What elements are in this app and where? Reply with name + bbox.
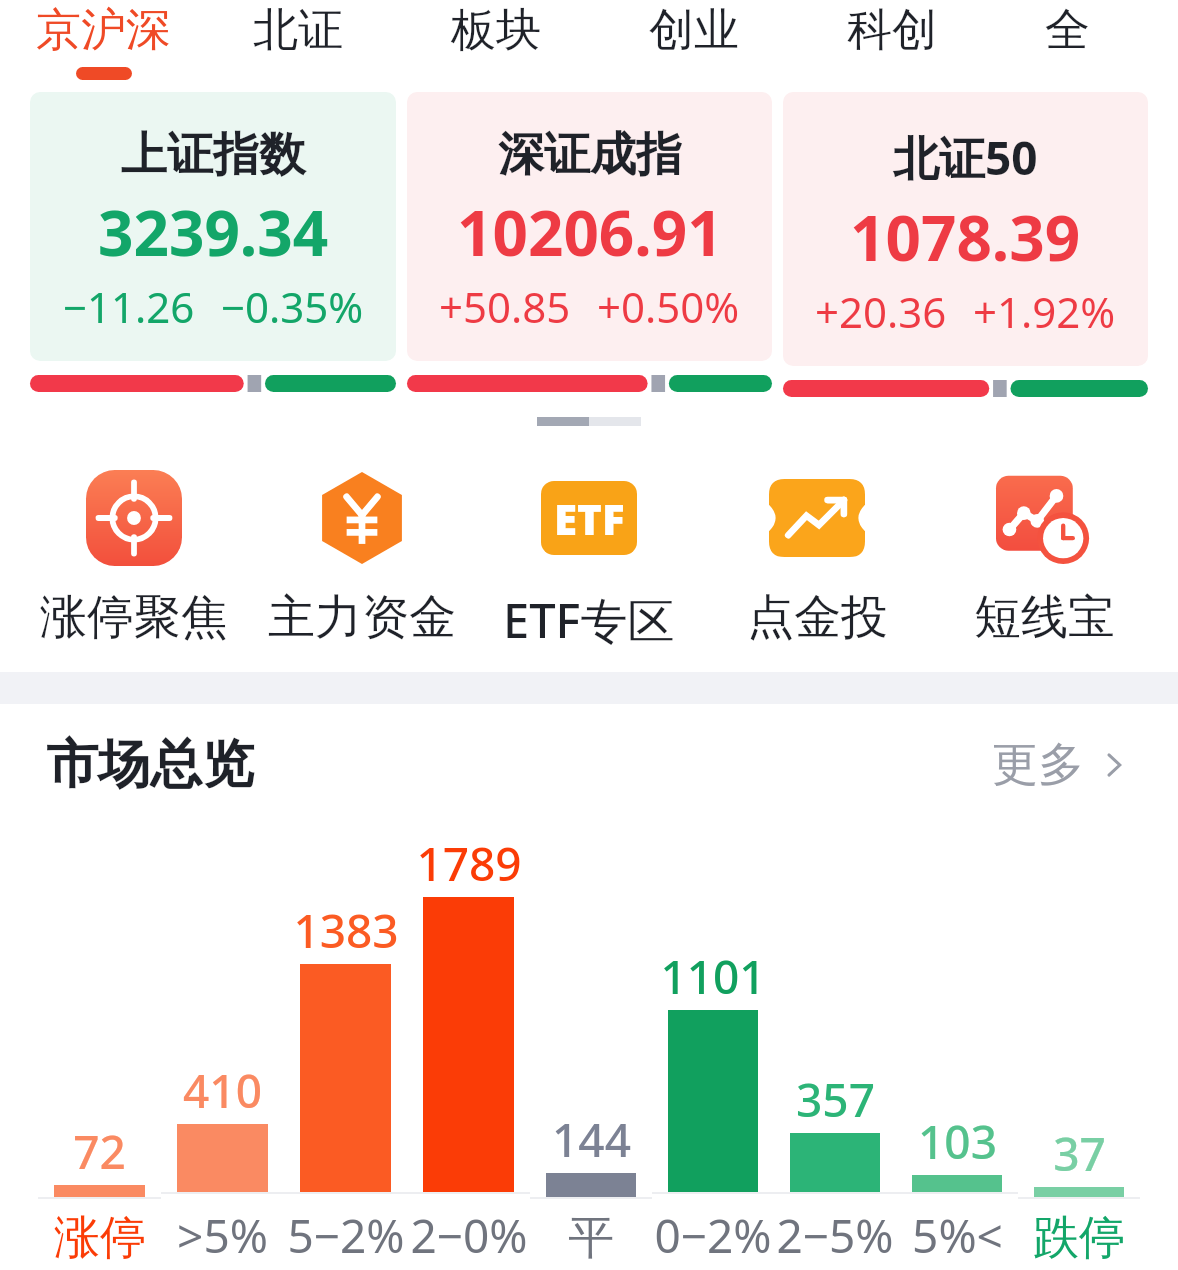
staticText: −0.35% [221, 278, 364, 335]
staticText: 点金投 [747, 588, 888, 647]
button[interactable]: 1101 [652, 945, 774, 1267]
button[interactable]: 京沪深 [36, 2, 171, 80]
staticText: +50.85 [439, 278, 571, 335]
button[interactable]: 主力资金 [262, 468, 462, 647]
staticText: 科创 [847, 2, 937, 59]
staticText: 144 [552, 1108, 631, 1171]
button[interactable]: 全 [1045, 2, 1090, 67]
button[interactable]: 更多 [992, 736, 1132, 794]
staticText: 深证成指 [498, 126, 682, 184]
staticText: 创业 [649, 2, 739, 59]
button[interactable]: 144 [530, 1108, 652, 1267]
other: 短线宝 [996, 470, 1092, 566]
staticText: 2−0% [410, 1204, 528, 1267]
staticText: 上证指数 [121, 126, 305, 184]
button[interactable]: 涨停聚焦 [34, 468, 234, 647]
staticText: 357 [796, 1068, 875, 1131]
staticText: 更多 [992, 736, 1084, 794]
other: ETF专区 [541, 481, 637, 555]
staticText: 410 [183, 1059, 262, 1122]
staticText: 2−5% [776, 1204, 894, 1267]
button[interactable]: 短线宝 [944, 468, 1144, 647]
button[interactable]: 103 [896, 1110, 1018, 1267]
staticText: 1078.39 [850, 195, 1081, 279]
button[interactable]: 1383 [284, 899, 407, 1267]
staticText: ETF [554, 490, 625, 547]
staticText: −11.26 [63, 278, 195, 335]
staticText: 全 [1045, 2, 1090, 59]
button[interactable]: 357 [774, 1068, 896, 1267]
button[interactable]: 深证成指 [407, 92, 772, 392]
button[interactable]: 72 [38, 1120, 161, 1267]
staticText: >5% [177, 1204, 268, 1267]
button[interactable]: ETF专区 [489, 468, 689, 652]
button[interactable]: 北证 [253, 2, 343, 67]
other: 点金投 [769, 479, 865, 557]
button[interactable]: 创业 [649, 2, 739, 67]
other: 涨停聚焦 [86, 470, 182, 566]
staticText: 37 [1053, 1122, 1106, 1185]
staticText: ETF专区 [503, 588, 675, 652]
staticText: 北证50 [893, 126, 1038, 189]
staticText: 主力资金 [268, 588, 456, 647]
staticText: 跌停 [1033, 1209, 1125, 1267]
staticText: 1101 [660, 945, 766, 1008]
button[interactable]: 点金投 [717, 468, 917, 647]
staticText: 北证 [253, 2, 343, 59]
button[interactable]: 科创 [847, 2, 937, 67]
staticText: 短线宝 [974, 588, 1115, 647]
button[interactable]: 上证指数 [30, 92, 396, 392]
staticText: +0.50% [597, 278, 740, 335]
staticText: 1789 [416, 832, 522, 895]
staticText: 1383 [293, 899, 399, 962]
button[interactable]: 北证50 [783, 92, 1148, 397]
button[interactable]: 板块 [451, 2, 541, 67]
staticText: 市场总览 [46, 732, 254, 798]
staticText: 涨停聚焦 [40, 588, 228, 647]
button[interactable]: 37 [1018, 1122, 1140, 1267]
staticText: +20.36 [815, 283, 947, 340]
staticText: 平 [568, 1209, 614, 1267]
staticText: +1.92% [973, 283, 1116, 340]
staticText: 板块 [451, 2, 541, 59]
staticText: 涨停 [54, 1209, 146, 1267]
button[interactable]: 410 [161, 1059, 284, 1267]
staticText: 72 [73, 1120, 126, 1183]
staticText: 5%< [912, 1204, 1003, 1267]
staticText: 5−2% [287, 1204, 405, 1267]
other: 主力资金 [314, 470, 410, 566]
staticText: 京沪深 [36, 2, 171, 59]
staticText: 103 [918, 1110, 997, 1173]
staticText: 3239.34 [98, 190, 329, 274]
staticText: 10206.91 [457, 190, 723, 274]
button[interactable]: 1789 [407, 832, 530, 1267]
staticText: 0−2% [654, 1204, 772, 1267]
